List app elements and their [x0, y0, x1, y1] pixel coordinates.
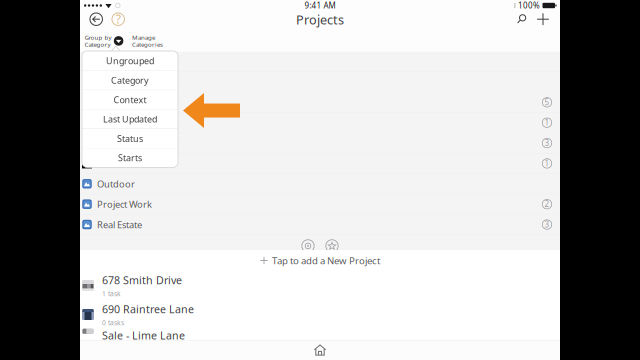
- button[interactable]: Project Work: [80, 194, 560, 215]
- button[interactable]: Category: [82, 70, 178, 90]
- button[interactable]: Outdoor: [80, 174, 560, 194]
- button[interactable]: Manage: [124, 31, 163, 50]
- staticText: 0 tasks: [102, 318, 124, 327]
- button[interactable]: Status: [82, 129, 178, 148]
- staticText: Category: [84, 40, 110, 49]
- button[interactable]: Starts: [82, 148, 178, 167]
- staticText: 1 task: [102, 289, 121, 298]
- staticText: 3: [544, 219, 549, 230]
- staticText: 1: [544, 158, 549, 169]
- button[interactable]: [80, 92, 560, 113]
- staticText: Sale - Lime Lane: [102, 328, 185, 342]
- staticText: 9:41 AM: [304, 0, 335, 11]
- button[interactable]: Real Estate: [80, 215, 560, 235]
- staticText: Context: [113, 94, 146, 106]
- staticText: Group by: [84, 33, 111, 42]
- button[interactable]: 690 Raintree Lane: [80, 300, 560, 329]
- button[interactable]: Search: [510, 10, 532, 28]
- button[interactable]: Home: [313, 344, 326, 357]
- button[interactable]: Add project: [532, 10, 554, 28]
- button[interactable]: Sale - Lime Lane: [80, 329, 560, 340]
- button[interactable]: Group by: [84, 31, 124, 50]
- button[interactable]: Focus: [301, 239, 314, 252]
- button[interactable]: [80, 133, 560, 153]
- button[interactable]: Help: [107, 10, 129, 28]
- button[interactable]: Context: [82, 90, 178, 109]
- staticText: Starts: [118, 152, 142, 164]
- staticText: Categories: [132, 40, 163, 49]
- staticText: Manage: [132, 33, 155, 42]
- staticText: Category: [111, 74, 149, 86]
- staticText: Status: [117, 132, 143, 145]
- staticText: 690 Raintree Lane: [102, 302, 194, 316]
- staticText: 3: [544, 137, 549, 148]
- staticText: Tap to add a New Project: [272, 254, 380, 267]
- staticText: ?: [116, 11, 121, 27]
- staticText: 2: [544, 198, 549, 209]
- staticText: Ungrouped: [106, 55, 154, 67]
- staticText: Projects: [296, 11, 344, 28]
- button[interactable]: Tap to add a New Project: [260, 250, 380, 271]
- button[interactable]: Back: [85, 10, 107, 28]
- button[interactable]: [80, 153, 560, 174]
- button[interactable]: 678 Smith Drive: [80, 271, 560, 300]
- staticText: Last Updated: [103, 113, 157, 125]
- staticText: 5: [544, 97, 549, 108]
- button[interactable]: [80, 113, 560, 133]
- button[interactable]: Last Updated: [82, 109, 178, 129]
- button[interactable]: Ungrouped: [82, 51, 178, 70]
- button[interactable]: [80, 72, 560, 92]
- button[interactable]: Starred: [325, 239, 338, 252]
- button[interactable]: [80, 52, 560, 72]
- staticText: Project Work: [97, 198, 152, 210]
- staticText: 1: [544, 117, 549, 128]
- staticText: 678 Smith Drive: [102, 273, 182, 287]
- staticText: Outdoor: [97, 177, 135, 190]
- staticText: Real Estate: [97, 218, 142, 231]
- staticText: 100%: [518, 0, 540, 11]
